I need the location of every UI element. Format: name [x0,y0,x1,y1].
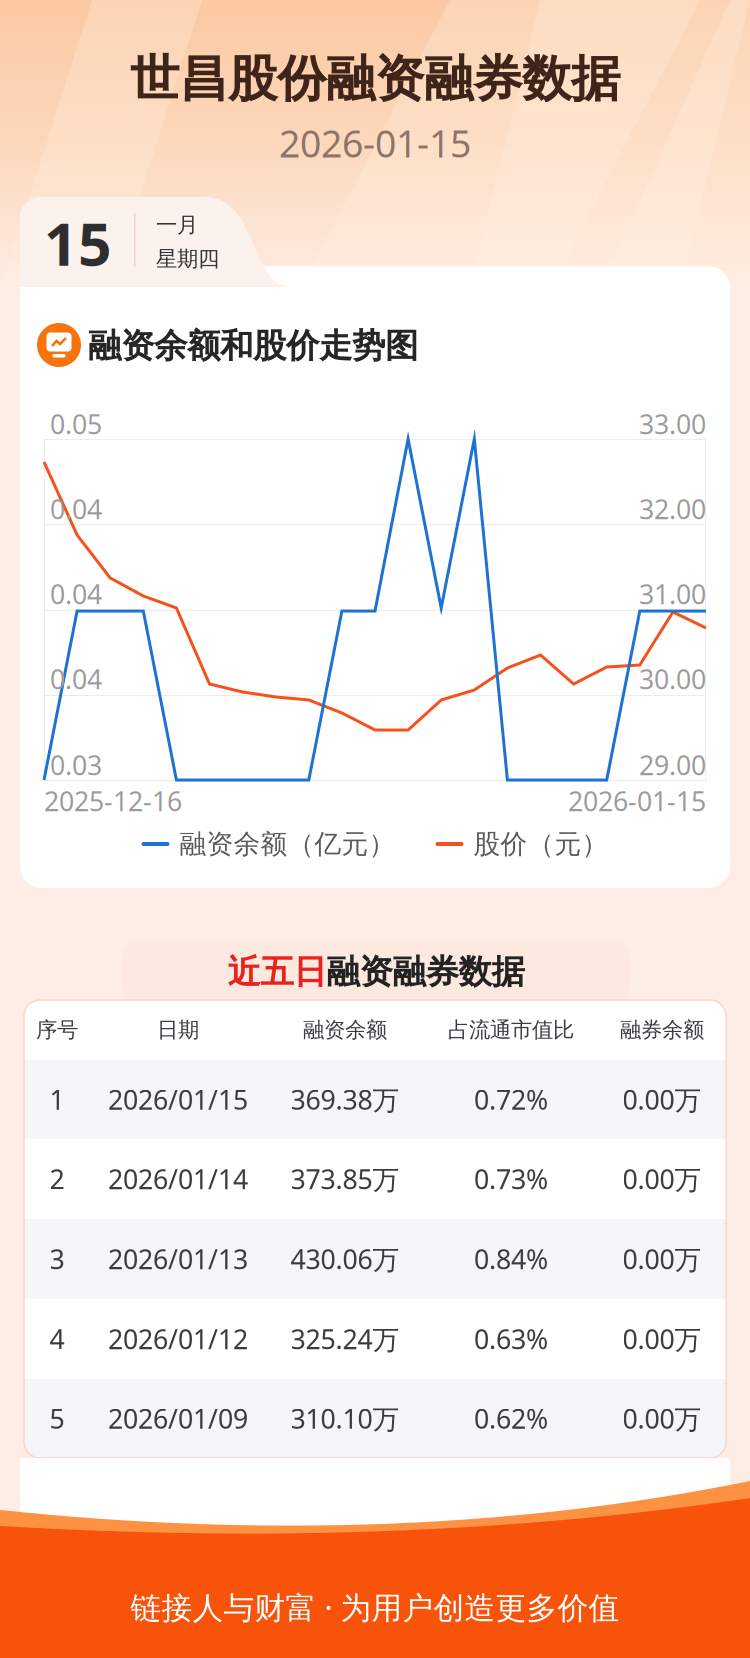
staticText: 2026/01/15 [108,1082,248,1117]
staticText: 0.00万 [622,1321,701,1357]
staticText: 2026/01/09 [108,1401,248,1436]
staticText: 2025-12-16 [44,783,182,819]
staticText: 占流通市值比 [448,1017,574,1043]
staticText: 链接人与财富 · 为用户创造更多价值 [130,1587,619,1627]
staticText: 融资融券数据 [326,951,524,992]
staticText: 0.73% [474,1161,548,1197]
staticText: 2 [49,1161,64,1197]
staticText: 融资余额和股价走势图 [88,325,418,366]
staticText: 0.72% [474,1082,548,1117]
staticText: 3 [49,1241,64,1277]
staticText: 近五日 [227,951,326,992]
staticText: 0.00万 [622,1241,701,1277]
staticText: 融资余额 [303,1017,387,1043]
staticText: 融资余额（亿元） [179,828,395,860]
staticText: 325.24万 [290,1321,399,1357]
staticText: 世昌股份融资融券数据 [130,49,620,109]
staticText: 0.04 [50,576,102,612]
staticText: 0.63% [474,1321,548,1357]
staticText: 0.04 [50,491,102,527]
staticText: 15 [44,204,112,282]
staticText: 0.84% [474,1241,548,1277]
staticText: 0.62% [474,1401,548,1436]
staticText: 310.10万 [290,1401,399,1436]
staticText: 1 [49,1082,64,1117]
staticText: 430.06万 [290,1241,399,1277]
staticText: 373.85万 [290,1161,399,1197]
staticText: 一月 [156,212,198,238]
staticText: 33.00 [639,406,706,442]
staticText: 2026-01-15 [279,118,471,168]
staticText: 32.00 [639,491,706,527]
staticText: 29.00 [639,747,706,783]
staticText: 0.04 [50,661,102,697]
staticText: 0.05 [50,406,102,442]
staticText: 31.00 [639,576,706,612]
staticText: 0.00万 [622,1401,701,1436]
staticText: 融券余额 [620,1017,704,1043]
staticText: 2026/01/12 [108,1321,248,1357]
staticText: 2026-01-15 [568,783,706,819]
staticText: 30.00 [639,661,706,697]
staticText: 0.00万 [622,1082,701,1117]
staticText: 股价（元） [473,828,608,860]
staticText: 4 [49,1321,64,1357]
staticText: 星期四 [156,246,219,272]
staticText: 2026/01/14 [108,1161,248,1197]
staticText: 序号 [36,1017,78,1043]
staticText: 2026/01/13 [108,1241,248,1277]
staticText: 0.03 [50,747,102,783]
staticText: 0.00万 [622,1161,701,1197]
staticText: 5 [49,1401,64,1436]
staticText: 369.38万 [290,1082,399,1117]
staticText: 日期 [157,1017,199,1043]
